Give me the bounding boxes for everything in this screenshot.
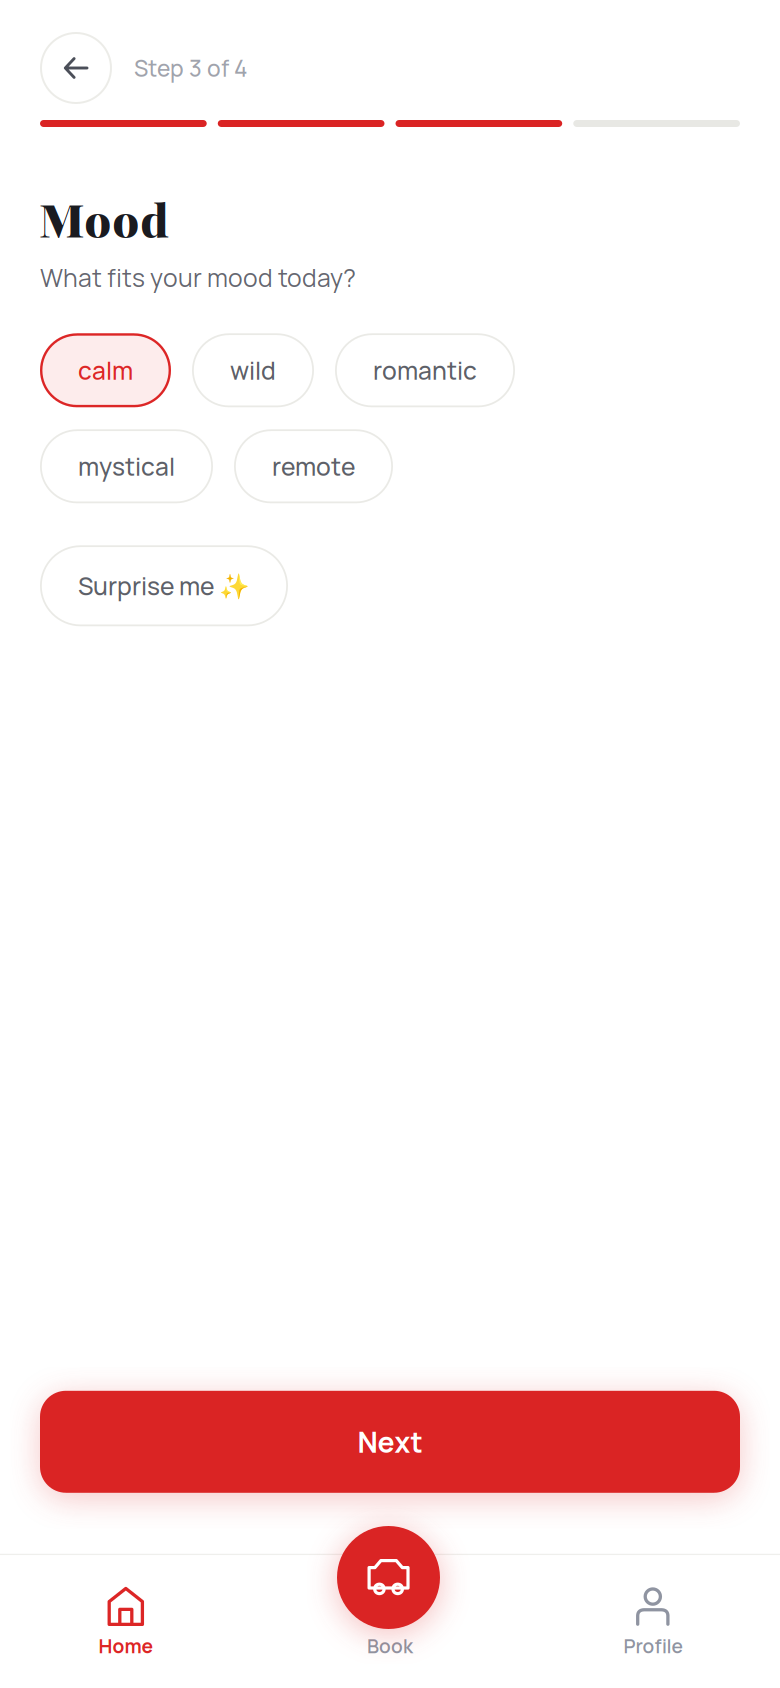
- staticText: What fits your mood today?: [40, 261, 356, 294]
- button[interactable]: Profile: [520, 1555, 780, 1688]
- staticText: Mood: [39, 189, 169, 255]
- button[interactable]: Book: [260, 1555, 520, 1688]
- button[interactable]: calm: [40, 333, 171, 407]
- button[interactable]: romantic: [335, 333, 515, 407]
- staticText: Home: [98, 1633, 153, 1659]
- button[interactable]: Surprise me ✨: [40, 545, 288, 626]
- button[interactable]: wild: [192, 333, 314, 407]
- staticText: Profile: [623, 1633, 682, 1659]
- staticText: Book: [367, 1633, 413, 1659]
- button[interactable]: Back: [40, 32, 112, 104]
- staticText: Step 3 of 4: [134, 52, 248, 83]
- button[interactable]: Home: [0, 1555, 260, 1688]
- staticText: romantic: [373, 353, 477, 387]
- button[interactable]: Next: [40, 1391, 740, 1493]
- button[interactable]: mystical: [40, 429, 213, 503]
- staticText: wild: [230, 353, 276, 387]
- staticText: Surprise me ✨: [78, 569, 250, 602]
- button[interactable]: Book: [337, 1526, 440, 1629]
- staticText: Next: [357, 1422, 422, 1461]
- staticText: mystical: [78, 449, 175, 483]
- staticText: calm: [78, 353, 133, 387]
- staticText: remote: [272, 449, 355, 483]
- button[interactable]: remote: [234, 429, 393, 503]
